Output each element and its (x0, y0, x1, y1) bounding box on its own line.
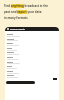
staticText: Find anything broadcast in the (4, 4, 49, 8)
button[interactable] (6, 81, 35, 84)
staticText: Search results (10, 28, 25, 31)
button[interactable]: Search results (7, 27, 59, 31)
staticText: in many formats (4, 16, 28, 20)
staticText: past and export your data (4, 10, 42, 14)
